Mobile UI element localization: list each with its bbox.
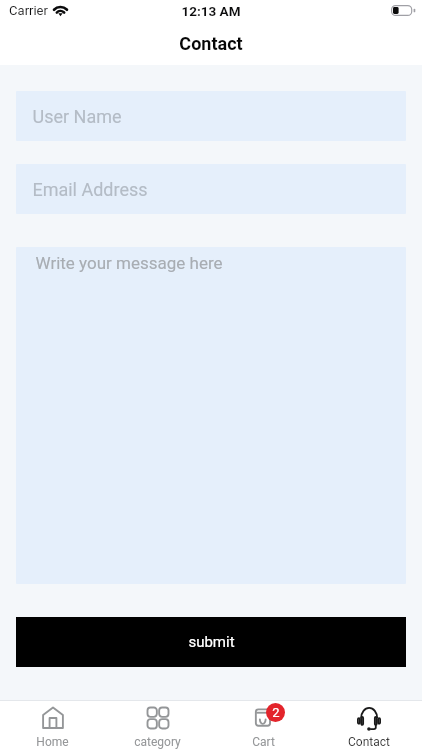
button[interactable]: Contact	[316, 701, 422, 750]
button[interactable]: Cart	[210, 701, 316, 750]
staticText: submit	[188, 633, 235, 651]
staticText: Contact	[348, 735, 390, 749]
button[interactable]: Category	[105, 701, 210, 750]
staticText: category	[134, 735, 181, 749]
staticText: Write your message here	[35, 253, 223, 273]
button[interactable]: Write your message here	[16, 247, 406, 584]
staticText: Home	[36, 735, 69, 749]
staticText: Cart	[252, 735, 275, 749]
staticText: User Name	[32, 106, 122, 127]
button[interactable]: User Name	[16, 91, 406, 141]
staticText: Email Address	[32, 179, 148, 200]
staticText: Carrier	[9, 3, 48, 18]
staticText: 12:13 AM	[181, 3, 241, 19]
staticText: 2	[272, 705, 280, 720]
button[interactable]: Email Address	[16, 164, 406, 214]
button[interactable]: submit	[16, 617, 406, 667]
button[interactable]: Home	[0, 701, 105, 750]
staticText: Contact	[179, 33, 243, 54]
